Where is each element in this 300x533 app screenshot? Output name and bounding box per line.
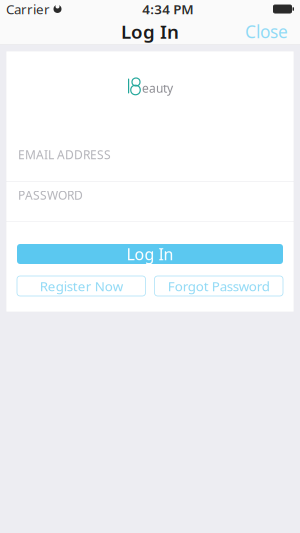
staticText: eauty (142, 80, 173, 96)
staticText: 4:34 PM (142, 0, 193, 18)
staticText: Carrier (6, 0, 50, 18)
staticText: Register Now (40, 277, 123, 295)
button[interactable]: Log In (17, 244, 283, 264)
staticText: PASSWORD (18, 187, 83, 203)
button[interactable]: Register Now (17, 276, 145, 296)
button[interactable]: Forgot Password (154, 276, 283, 296)
staticText: Log In (121, 19, 179, 44)
staticText: Log In (126, 243, 173, 265)
staticText: Forgot Password (168, 277, 270, 295)
staticText: Close (245, 20, 288, 43)
button[interactable]: Close (237, 15, 296, 48)
staticText: EMAIL ADDRESS (18, 146, 111, 162)
